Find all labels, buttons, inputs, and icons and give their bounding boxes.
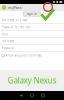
staticText: Sign in	[27, 12, 37, 16]
button[interactable]: Host	[0, 31, 64, 38]
button[interactable]: Sign in	[23, 12, 41, 16]
button[interactable]: Password for the site	[0, 24, 64, 31]
staticText: Password for the site	[2, 25, 31, 29]
staticText: Username	[2, 39, 15, 43]
button[interactable]: Back	[15, 91, 26, 100]
staticText: Password	[2, 46, 14, 50]
button[interactable]: Recent apps	[37, 91, 48, 100]
staticText: myPass	[8, 5, 22, 10]
button[interactable]: Username	[0, 38, 64, 45]
staticText: Username or e-mail	[2, 18, 28, 22]
button[interactable]: Allow any public certificate	[0, 52, 64, 59]
button[interactable]: Username or e-mail	[0, 17, 64, 24]
staticText: Galaxy Nexus	[7, 75, 56, 86]
button[interactable]: Password	[0, 45, 64, 52]
button[interactable]: Home	[26, 91, 37, 100]
staticText: Allow any public certificate	[6, 54, 43, 57]
staticText: Host	[2, 32, 8, 36]
